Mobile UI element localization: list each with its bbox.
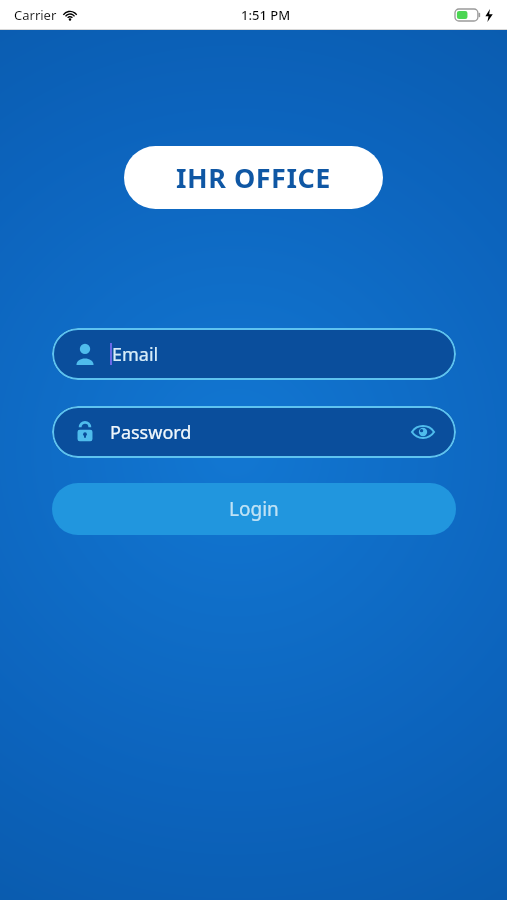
staticText: 1:51 PM [241,6,291,24]
staticText: Login [229,496,279,522]
staticText: Email [112,342,159,367]
staticText: Password [110,420,192,445]
button[interactable]: Login [52,483,456,535]
other: Email [74,343,96,365]
button[interactable]: Show password [406,415,440,449]
button[interactable]: Password [52,406,456,458]
staticText: IHR OFFICE [176,159,331,196]
button[interactable]: IHR OFFICE [124,146,383,209]
button[interactable]: Email [52,328,456,380]
other: Password [74,421,96,443]
staticText: Carrier [14,6,57,24]
